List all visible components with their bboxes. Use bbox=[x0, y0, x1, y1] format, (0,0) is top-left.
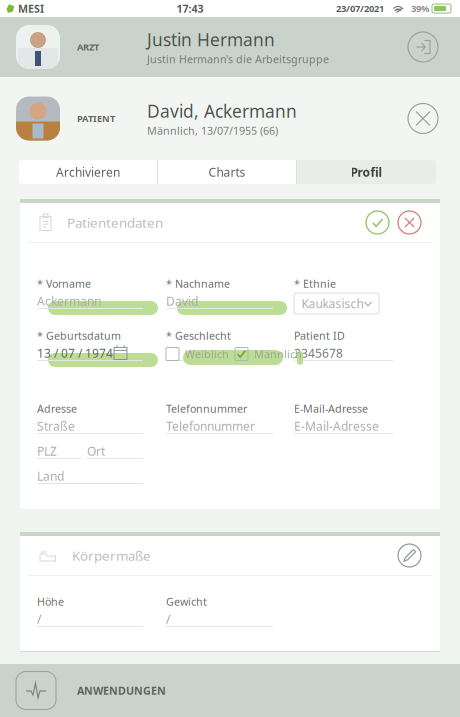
staticText: Telefonnummer bbox=[166, 401, 247, 416]
staticText: PLZ bbox=[37, 443, 57, 459]
staticText: E-Mail-Adresse bbox=[294, 418, 379, 434]
staticText: MESI bbox=[18, 1, 44, 16]
button[interactable]: Abbrechen bbox=[398, 211, 421, 234]
staticText: ANWENDUNGEN bbox=[77, 683, 166, 698]
staticText: Körpermaße bbox=[72, 547, 151, 564]
staticText: Männlich bbox=[254, 347, 302, 361]
staticText: Telefonnummer bbox=[166, 418, 255, 434]
button[interactable]: Bearbeiten bbox=[398, 544, 421, 567]
button[interactable]: Archivieren bbox=[19, 160, 157, 184]
button[interactable]: Profil bbox=[297, 160, 436, 184]
staticText: / bbox=[37, 611, 41, 627]
button[interactable]: Speichern bbox=[366, 211, 389, 234]
staticText: PATIENT bbox=[77, 112, 115, 125]
staticText: E-Mail-Adresse bbox=[294, 401, 368, 416]
staticText: 3345678 bbox=[294, 345, 343, 361]
staticText: Kaukasisch bbox=[301, 295, 363, 311]
staticText: Männlich, 13/07/1955 (66) bbox=[147, 123, 278, 138]
staticText: Gewicht bbox=[166, 594, 207, 609]
staticText: 23/07/2021 bbox=[336, 2, 384, 15]
staticText: David, Ackermann bbox=[147, 99, 297, 122]
staticText: Land bbox=[37, 468, 64, 484]
staticText: Charts bbox=[208, 164, 245, 180]
button[interactable]: Patient schließen bbox=[408, 103, 438, 133]
staticText: * Geburtsdatum bbox=[37, 328, 121, 343]
staticText: Patientendaten bbox=[67, 214, 163, 231]
staticText: * Ethnie bbox=[294, 276, 336, 291]
staticText: * Nachname bbox=[166, 276, 230, 291]
staticText: / bbox=[166, 611, 170, 627]
staticText: Straße bbox=[37, 418, 75, 434]
staticText: David bbox=[166, 293, 198, 309]
staticText: Profil bbox=[350, 164, 382, 180]
staticText: Weiblich bbox=[185, 347, 229, 361]
staticText: 17:43 bbox=[176, 1, 203, 16]
button[interactable]: Charts bbox=[158, 160, 296, 184]
staticText: * Vorname bbox=[37, 276, 91, 291]
staticText: Ort bbox=[87, 443, 105, 459]
staticText: Archivieren bbox=[56, 164, 120, 180]
staticText: Adresse bbox=[37, 401, 77, 416]
staticText: 13 / 07 / 1974 bbox=[37, 345, 113, 361]
staticText: Justin Hermann bbox=[147, 28, 275, 51]
button[interactable]: ANWENDUNGEN bbox=[0, 664, 460, 717]
staticText: Ackermann bbox=[37, 293, 101, 309]
staticText: Höhe bbox=[37, 594, 64, 609]
staticText: Patient ID bbox=[294, 328, 345, 343]
staticText: ARZT bbox=[77, 41, 99, 53]
button[interactable]: Kaukasisch bbox=[294, 293, 379, 314]
staticText: * Geschlecht bbox=[166, 328, 231, 343]
button[interactable]: Abmelden bbox=[408, 32, 438, 62]
staticText: 39% bbox=[411, 2, 429, 15]
staticText: Justin Hermann's die Arbeitsgruppe bbox=[147, 52, 329, 66]
